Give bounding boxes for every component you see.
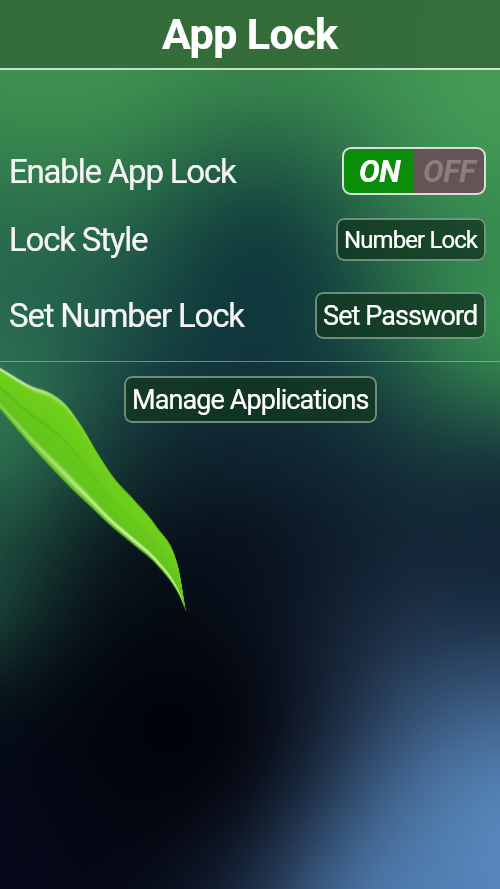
- button[interactable]: Manage Applications: [124, 376, 377, 423]
- button[interactable]: App Lock: [0, 0, 500, 68]
- staticText: Set Number Lock: [9, 296, 244, 335]
- staticText: Number Lock: [344, 226, 478, 254]
- staticText: Set Password: [323, 300, 478, 332]
- staticText: OFF: [423, 153, 476, 189]
- staticText: ON: [359, 153, 400, 189]
- staticText: Lock Style: [9, 220, 148, 259]
- staticText: App Lock: [162, 9, 338, 59]
- staticText: Enable App Lock: [9, 152, 236, 191]
- button[interactable]: Number Lock: [336, 218, 486, 261]
- staticText: Manage Applications: [132, 384, 369, 416]
- button[interactable]: ON: [342, 147, 486, 195]
- button[interactable]: Set Password: [315, 292, 486, 339]
